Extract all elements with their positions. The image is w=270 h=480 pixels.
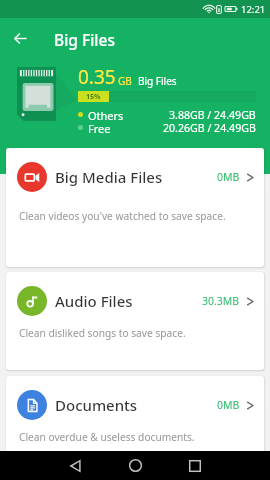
staticText: 0MB: [217, 170, 240, 184]
button[interactable]: Home: [120, 451, 150, 480]
staticText: Others: [88, 108, 124, 121]
staticText: Audio Files: [55, 291, 133, 311]
staticText: 0MB: [217, 398, 240, 412]
staticText: Documents: [55, 395, 138, 415]
staticText: GB: [118, 74, 132, 88]
staticText: 3.88GB / 24.49GB: [169, 108, 256, 121]
staticText: Big Media Files: [55, 167, 163, 187]
staticText: Big Files: [54, 29, 115, 50]
button[interactable]: Documents: [6, 376, 264, 474]
staticText: 20.26GB / 24.49GB: [163, 121, 256, 134]
button[interactable]: Audio Files: [6, 272, 264, 370]
staticText: 15%: [86, 92, 101, 102]
staticText: 0.35: [78, 64, 116, 90]
staticText: 12:21: [241, 3, 266, 16]
staticText: Clean overdue & useless documents.: [19, 430, 195, 444]
button[interactable]: Recent apps: [180, 451, 210, 480]
staticText: 30.3MB: [202, 294, 240, 308]
button[interactable]: Big Media Files: [6, 148, 264, 267]
staticText: Free: [88, 121, 111, 134]
button[interactable]: Back: [0, 18, 40, 58]
staticText: Big Files: [138, 74, 177, 88]
staticText: Clean videos you've watched to save spac…: [19, 209, 226, 223]
staticText: Clean disliked songs to save space.: [19, 326, 186, 340]
button[interactable]: Back: [60, 451, 90, 480]
